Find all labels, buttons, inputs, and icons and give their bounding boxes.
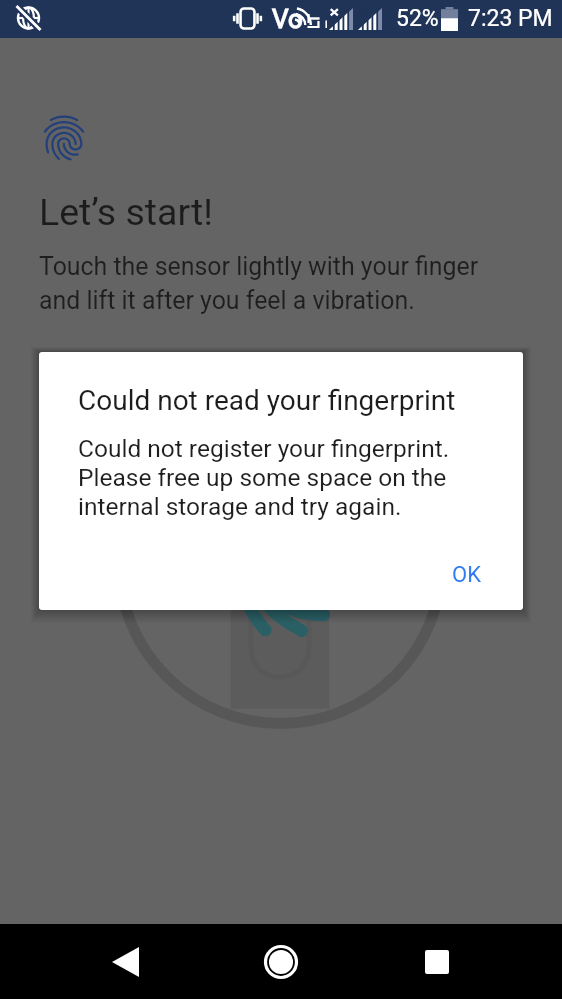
staticText: Could not read your fingerprint	[78, 384, 456, 417]
staticText: Vo	[272, 4, 303, 34]
button[interactable]: Recents	[405, 930, 469, 994]
staticText: 7:23 PM	[468, 5, 553, 32]
staticText: OK	[452, 562, 481, 588]
button[interactable]: OK	[442, 554, 491, 596]
staticText: Touch the sensor lightly with your finge…	[39, 252, 509, 316]
staticText: Could not register your fingerprint. Ple…	[78, 434, 493, 521]
staticText: Let’s start!	[39, 190, 214, 234]
staticText: LTE	[305, 7, 327, 29]
button[interactable]: Back	[93, 930, 157, 994]
staticText: 52%	[396, 5, 439, 32]
button[interactable]: Home	[249, 930, 313, 994]
